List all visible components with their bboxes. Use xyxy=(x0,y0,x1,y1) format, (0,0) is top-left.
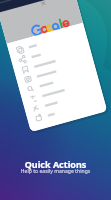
staticText: Help to easily manage things xyxy=(0,168,111,175)
staticText: Quick Actions xyxy=(0,158,111,170)
